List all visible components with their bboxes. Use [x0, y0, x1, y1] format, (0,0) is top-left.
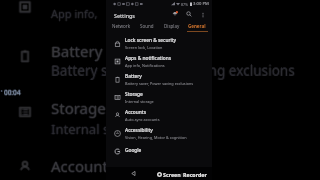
staticText: Recorder: [183, 171, 207, 178]
staticText: Screen lock, Location: [125, 45, 163, 50]
staticText: 00:04: [4, 87, 21, 96]
staticText: 3:00 PM: [193, 1, 209, 7]
button[interactable]: Battery: [106, 70, 212, 88]
staticText: Battery: [51, 41, 103, 61]
staticText: Internal storage: [51, 119, 150, 137]
staticText: Battery saver, Power saving exclusions: [51, 61, 295, 80]
staticText: 00:04: [4, 88, 21, 97]
staticText: Internal storage: [51, 120, 150, 138]
staticText: Storage: [51, 98, 106, 118]
staticText: Battery: [50, 41, 102, 61]
staticText: Settings: [114, 12, 135, 19]
staticText: Storage: [52, 98, 107, 118]
staticText: Accounts: [52, 156, 117, 176]
staticText: Storage: [51, 98, 106, 118]
staticText: Storage: [51, 98, 106, 118]
staticText: Accounts: [51, 157, 116, 177]
staticText: Internal storage: [51, 120, 150, 138]
button[interactable]: Sound: [134, 20, 159, 33]
staticText: 00:04: [4, 88, 21, 97]
button[interactable]: General: [184, 20, 209, 33]
button[interactable]: Search: [184, 9, 194, 19]
staticText: Storage: [125, 91, 143, 98]
staticText: App info,: [51, 6, 98, 21]
button[interactable]: Apps & notifications: [106, 52, 212, 70]
staticText: Storage: [51, 98, 106, 118]
staticText: App info,: [51, 7, 98, 22]
staticText: Battery saver, Power saving exclusions: [51, 60, 295, 79]
staticText: Accounts: [50, 156, 115, 176]
staticText: Internal storage: [51, 120, 150, 138]
staticText: Accessibility: [125, 127, 153, 134]
staticText: General: [188, 23, 206, 29]
staticText: Lock screen & security: [125, 37, 177, 44]
staticText: Battery saver, Power saving exclusions: [51, 60, 295, 79]
staticText: Battery: [51, 41, 103, 61]
button[interactable]: Back: [129, 169, 138, 178]
staticText: Battery saver, Power saving exclusions: [52, 61, 296, 80]
staticText: Vision, Hearing, Motor & cognition: [125, 135, 187, 140]
staticText: Battery saver, Power saving exclusions: [51, 61, 295, 80]
button[interactable]: Display: [159, 20, 184, 33]
staticText: 87%: [181, 2, 189, 7]
staticText: Battery saver, Power saving exclusions: [51, 60, 295, 79]
staticText: Battery saver, Power saving exclusions: [51, 61, 295, 80]
staticText: Internal storage: [51, 121, 150, 139]
button[interactable]: More options: [198, 10, 207, 19]
staticText: Internal storage: [125, 99, 154, 104]
staticText: Accounts: [51, 155, 116, 175]
button[interactable]: Accessibility: [106, 124, 212, 142]
staticText: Battery: [51, 41, 103, 61]
staticText: App info,: [51, 6, 98, 21]
staticText: Battery: [125, 73, 142, 80]
staticText: Battery: [51, 42, 103, 62]
button[interactable]: Notifications: [170, 9, 180, 19]
staticText: Battery saver, Power saving exclusions: [50, 61, 294, 80]
staticText: App info,: [52, 6, 99, 21]
staticText: Auto-sync accounts: [125, 117, 160, 122]
staticText: Storage: [51, 97, 106, 117]
button[interactable]: Storage: [106, 88, 212, 106]
button[interactable]: Network: [109, 20, 134, 33]
staticText: Accounts: [51, 156, 116, 176]
staticText: Accounts: [51, 156, 116, 176]
staticText: 00:04: [5, 88, 22, 97]
staticText: Battery: [51, 41, 103, 61]
staticText: 00:04: [4, 89, 21, 98]
button[interactable]: Lock screen & security: [106, 34, 212, 52]
staticText: Battery saver, Power saving exclusions: [125, 81, 194, 86]
staticText: Accounts: [51, 156, 116, 176]
staticText: App info, Notifications: [125, 63, 165, 68]
staticText: Apps & notifications: [125, 55, 172, 62]
staticText: App info,: [51, 6, 98, 21]
staticText: Storage: [51, 98, 106, 118]
button[interactable]: Google: [106, 142, 212, 160]
staticText: Accounts: [51, 156, 116, 176]
staticText: App info,: [51, 6, 98, 21]
staticText: Storage: [50, 98, 105, 118]
button[interactable]: Accounts: [106, 106, 212, 124]
staticText: App info,: [50, 6, 97, 21]
staticText: Battery: [51, 40, 103, 60]
staticText: App info,: [51, 6, 98, 21]
staticText: Internal storage: [50, 120, 149, 138]
staticText: Internal storage: [51, 120, 150, 138]
staticText: Display: [164, 23, 180, 29]
staticText: Battery: [51, 41, 103, 61]
staticText: Internal storage: [51, 120, 150, 138]
staticText: Network: [112, 23, 131, 29]
staticText: Battery saver, Power saving exclusions: [51, 61, 295, 80]
staticText: Internal storage: [52, 120, 151, 138]
staticText: Battery: [52, 41, 104, 61]
staticText: App info,: [51, 5, 98, 20]
staticText: Storage: [51, 99, 106, 119]
staticText: Accounts: [51, 156, 116, 176]
staticText: Google: [125, 147, 142, 154]
staticText: Screen: [163, 171, 181, 178]
staticText: Sound: [140, 23, 154, 29]
staticText: Accounts: [125, 109, 146, 116]
